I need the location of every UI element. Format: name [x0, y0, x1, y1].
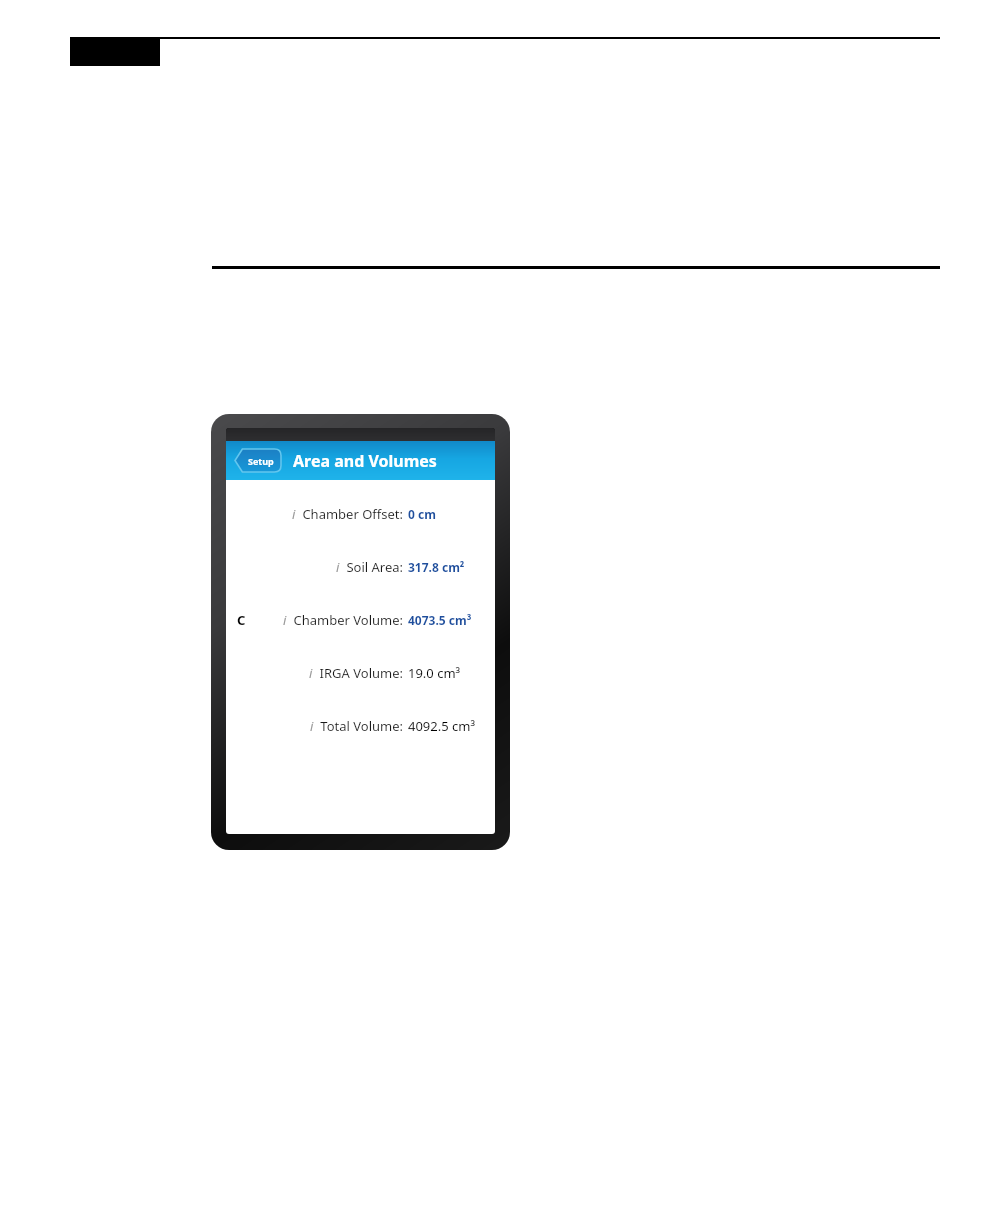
- staticText: i: [336, 558, 340, 576]
- staticText: i: [309, 664, 313, 682]
- staticText: Soil Area:: [346, 558, 403, 576]
- staticText: 0 cm: [408, 506, 436, 522]
- staticText: 4073.5 cm³: [408, 612, 472, 628]
- staticText: Setup: [248, 455, 274, 467]
- staticText: i: [310, 717, 314, 735]
- button[interactable]: i: [226, 661, 495, 685]
- staticText: Total Volume:: [320, 717, 403, 735]
- staticText: Chamber Volume:: [293, 611, 403, 629]
- staticText: 4092.5 cm³: [408, 717, 475, 735]
- button[interactable]: i: [226, 555, 495, 579]
- staticText: IRGA Volume:: [319, 664, 403, 682]
- button[interactable]: i: [226, 714, 495, 738]
- staticText: i: [292, 505, 296, 523]
- button[interactable]: Setup, back: [235, 449, 281, 472]
- staticText: Chamber Offset:: [302, 505, 403, 523]
- staticText: Area and Volumes: [293, 450, 437, 472]
- staticText: C: [237, 611, 246, 629]
- staticText: i: [283, 611, 287, 629]
- staticText: 317.8 cm²: [408, 559, 465, 575]
- button[interactable]: i: [226, 502, 495, 526]
- button[interactable]: C: [226, 608, 495, 632]
- staticText: 19.0 cm³: [408, 664, 461, 682]
